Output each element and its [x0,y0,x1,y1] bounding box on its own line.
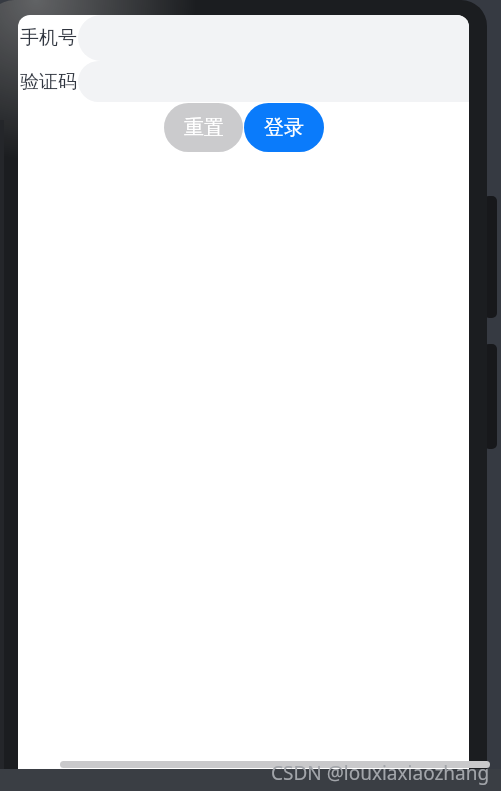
button[interactable]: 重置 [164,103,243,152]
staticText: 手机号 [20,26,77,50]
staticText: 验证码 [20,70,77,94]
staticText: 重置 [184,115,224,140]
staticText: 登录 [264,115,304,140]
button[interactable]: 登录 [244,103,324,152]
button[interactable] [78,15,469,61]
staticText: CSDN @louxiaxiaozhang [271,760,490,786]
